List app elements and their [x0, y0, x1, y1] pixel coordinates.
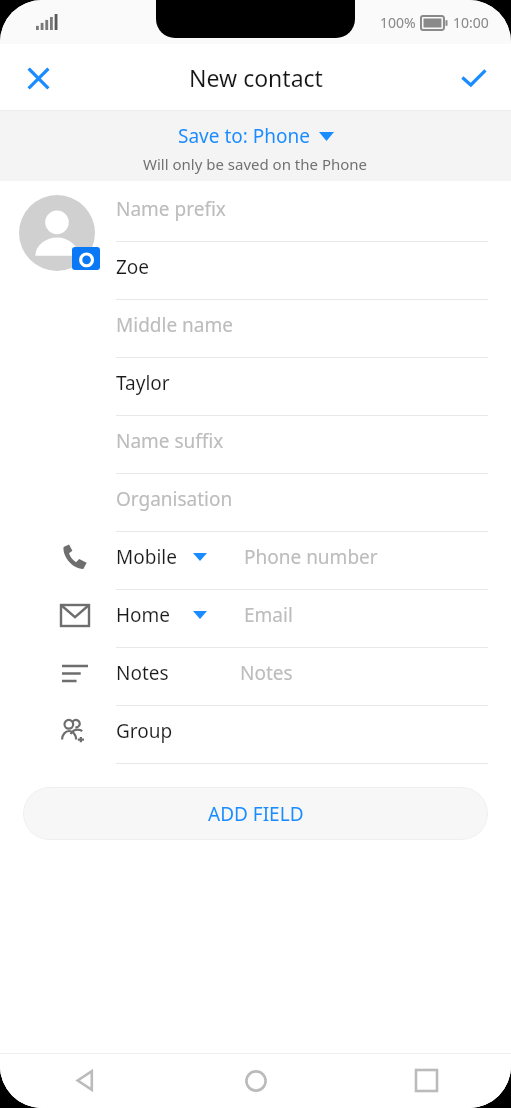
button[interactable]: ADD FIELD: [23, 787, 488, 840]
staticText: Phone number: [244, 544, 378, 570]
button[interactable]: Mobile: [0, 532, 511, 590]
button[interactable]: Name suffix: [0, 416, 511, 474]
button[interactable]: Group: [0, 706, 511, 764]
button[interactable]: Middle name: [0, 300, 511, 358]
staticText: Name prefix: [116, 196, 226, 222]
staticText: 10:00: [453, 13, 489, 32]
staticText: New contact: [189, 62, 323, 93]
staticText: Zoe: [116, 254, 150, 280]
button[interactable]: Name prefix: [0, 184, 511, 242]
button[interactable]: Home: [0, 590, 511, 648]
button[interactable]: Save to: Phone: [0, 111, 511, 181]
staticText: Email: [244, 602, 293, 628]
button[interactable]: Zoe: [0, 242, 511, 300]
button[interactable]: Save: [445, 50, 501, 106]
button[interactable]: Home: [171, 1053, 341, 1108]
staticText: Notes: [116, 660, 169, 686]
staticText: Name suffix: [116, 428, 224, 454]
staticText: Notes: [240, 660, 293, 686]
button[interactable]: Close: [10, 50, 66, 106]
staticText: Group: [116, 718, 173, 744]
staticText: ADD FIELD: [208, 801, 304, 827]
button[interactable]: Organisation: [0, 474, 511, 532]
staticText: Save to: Phone: [178, 123, 310, 149]
staticText: Middle name: [116, 312, 233, 338]
button[interactable]: Back: [0, 1053, 171, 1108]
button[interactable]: Recents: [341, 1053, 511, 1108]
staticText: 100%: [380, 13, 416, 32]
staticText: Mobile: [116, 544, 177, 570]
staticText: Will only be saved on the Phone: [143, 154, 368, 174]
staticText: Taylor: [116, 370, 170, 396]
staticText: Organisation: [116, 486, 233, 512]
button[interactable]: Notes: [0, 648, 511, 706]
button[interactable]: Add photo: [19, 195, 96, 272]
button[interactable]: Taylor: [0, 358, 511, 416]
staticText: Home: [116, 602, 171, 628]
